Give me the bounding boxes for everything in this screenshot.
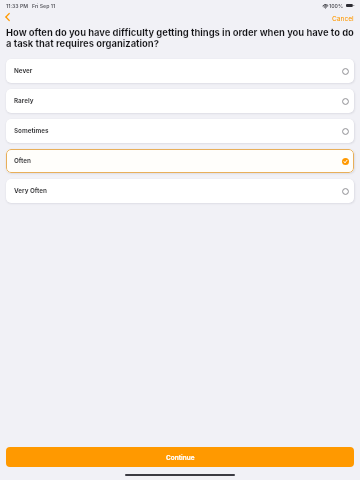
staticText: How often do you have difficulty getting… — [6, 27, 359, 49]
staticText: Rarely — [14, 97, 34, 105]
staticText: Sometimes — [14, 127, 49, 135]
staticText: Often — [14, 157, 32, 165]
button[interactable]: Very Often — [6, 179, 354, 203]
button[interactable]: Never — [6, 59, 354, 83]
button[interactable]: Back — [0, 9, 15, 24]
staticText: Never — [14, 67, 33, 75]
button[interactable]: Often — [6, 149, 354, 173]
staticText: 11:33 PM — [6, 3, 29, 9]
staticText: Very Often — [14, 187, 48, 195]
button[interactable]: Sometimes — [6, 119, 354, 143]
button[interactable]: Rarely — [6, 89, 354, 113]
staticText: 100% — [329, 3, 344, 9]
staticText: Cancel — [332, 15, 354, 23]
button[interactable]: Continue — [6, 447, 354, 467]
staticText: Continue — [166, 454, 195, 462]
button[interactable]: Cancel — [325, 12, 360, 25]
staticText: Fri Sep 11 — [32, 3, 56, 9]
